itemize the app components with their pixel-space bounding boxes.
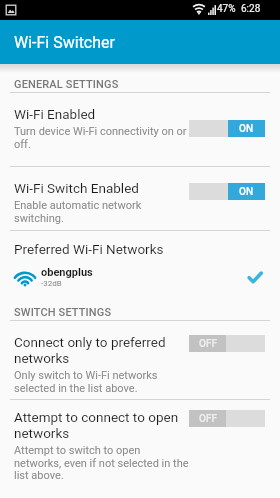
staticText: Wi-Fi Enabled xyxy=(14,106,96,122)
button[interactable]: Wi-Fi Switch Enabled xyxy=(0,180,280,224)
staticText: Enable automatic network switching. xyxy=(14,199,190,224)
staticText: Connect only to preferred networks xyxy=(14,334,190,366)
staticText: Attempt to connect to open networks xyxy=(14,409,190,441)
staticText: ON xyxy=(239,123,254,135)
staticText: Attempt to switch to open networks, even… xyxy=(14,444,190,481)
staticText: obengplus xyxy=(41,266,93,279)
staticText: OFF xyxy=(199,413,217,425)
staticText: Only switch to Wi-Fi networks selected i… xyxy=(14,369,190,394)
button[interactable]: Preferred Wi-Fi Networks xyxy=(0,239,280,258)
staticText: SWITCH SETTINGS xyxy=(14,306,112,319)
button[interactable]: obengplus xyxy=(0,264,280,290)
staticText: OFF xyxy=(199,338,217,350)
other: Connected xyxy=(248,272,262,283)
other: Photo notification xyxy=(5,4,17,16)
staticText: Turn device Wi-Fi connectivity on or off… xyxy=(14,125,190,150)
staticText: GENERAL SETTINGS xyxy=(14,78,119,91)
staticText: Preferred Wi-Fi Networks xyxy=(14,241,164,257)
button[interactable]: Switch on xyxy=(189,183,265,200)
button[interactable]: Wi-Fi Enabled xyxy=(0,106,280,150)
button[interactable]: Switch off xyxy=(189,410,265,427)
button[interactable]: Connect only to preferred networks xyxy=(0,334,280,394)
staticText: -32dB xyxy=(41,279,62,288)
staticText: Wi-Fi Switch Enabled xyxy=(14,180,139,196)
staticText: Wi-Fi Switcher xyxy=(14,33,115,52)
button[interactable]: Switch on xyxy=(189,120,265,137)
button[interactable]: Attempt to connect to open networks xyxy=(0,409,280,481)
staticText: 6:28 xyxy=(241,3,261,15)
staticText: ON xyxy=(239,186,254,198)
staticText: 47% xyxy=(217,3,236,15)
button[interactable]: Switch off xyxy=(189,335,265,352)
